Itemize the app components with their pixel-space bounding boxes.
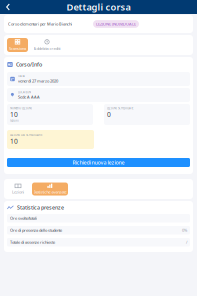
staticText: Corso/Info xyxy=(16,61,42,68)
button[interactable]: Scansiona xyxy=(7,38,28,52)
staticText: LEZIONI SCHEDULATE xyxy=(107,106,133,110)
button[interactable]: Back xyxy=(0,0,16,14)
button[interactable]: Richiedi nuova lezione xyxy=(7,158,190,167)
button[interactable]: Lezioni xyxy=(7,182,29,195)
button[interactable]: Statistiche avanzate xyxy=(32,182,68,195)
staticText: / xyxy=(186,240,187,245)
button[interactable]: Addebita crediti xyxy=(31,38,63,52)
staticText: Ore di presenza dello studente xyxy=(10,228,62,233)
staticText: 0 xyxy=(107,110,111,119)
staticText: 10 xyxy=(10,137,18,146)
staticText: LOCATION xyxy=(18,90,31,94)
staticText: NUMERO LEZIONI xyxy=(10,106,32,110)
staticText: Statistiche avanzate xyxy=(33,189,66,195)
staticText: LEZIONI DA SCHEDULARE xyxy=(10,133,42,137)
staticText: Scansiona xyxy=(9,46,26,51)
staticText: Dettagli corsa xyxy=(66,1,130,13)
staticText: lezioni xyxy=(10,119,19,122)
staticText: Statistica presenze xyxy=(17,204,64,211)
staticText: venerdì 27 marzo 2020 xyxy=(18,78,58,84)
staticText: DATA xyxy=(18,74,25,78)
staticText: Totale di assenze richieste xyxy=(10,240,55,245)
staticText: LEZIONE INDIVIDUALE xyxy=(96,21,136,27)
staticText: Addebita crediti xyxy=(33,46,60,51)
staticText: 10 xyxy=(10,110,18,119)
staticText: Lezioni xyxy=(12,189,24,195)
staticText: Sede A AAA xyxy=(18,94,40,100)
staticText: Ore svolte/totali xyxy=(10,216,37,221)
staticText: Richiedi nuova lezione xyxy=(72,159,124,166)
staticText: 0% xyxy=(182,228,187,233)
staticText: Corso elementari per Mario Bianchi xyxy=(8,21,72,27)
